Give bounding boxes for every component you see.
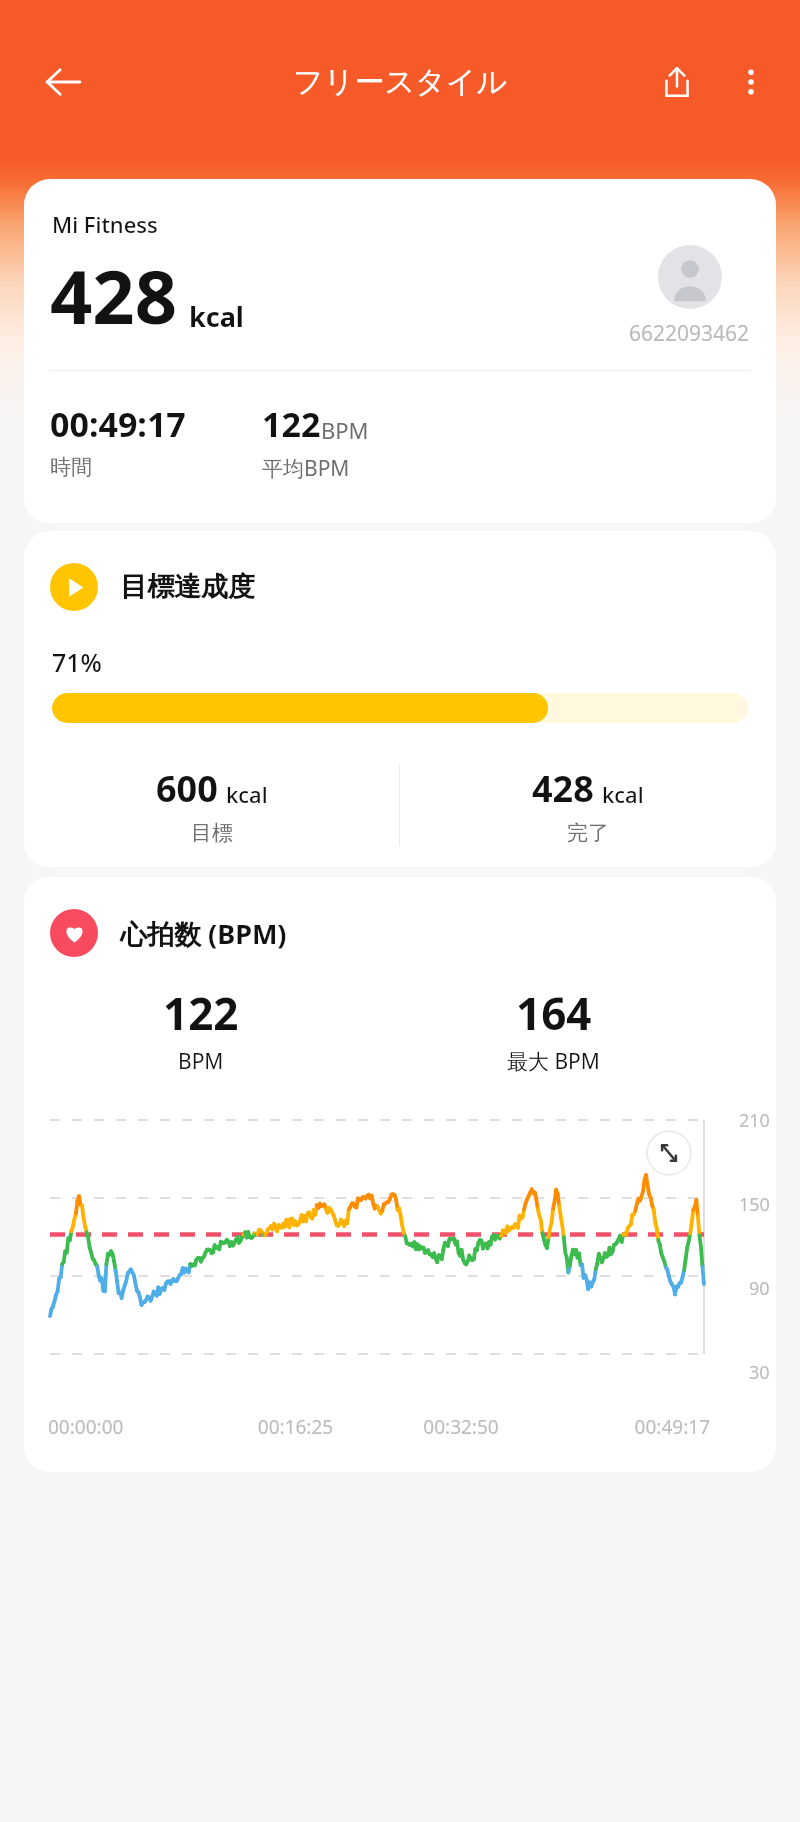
staticText: 心拍数 (BPM) [120,915,287,952]
staticText: 164 [516,983,592,1043]
staticText: 150 [739,1192,770,1217]
staticText: 平均BPM [262,454,350,483]
staticText: 71% [52,645,102,679]
staticText: 目標達成度 [120,570,255,604]
button[interactable]: Expand chart [646,1130,692,1176]
staticText: 目標 [191,820,233,846]
button[interactable]: Back [34,53,92,111]
staticText: 30 [749,1360,770,1385]
button[interactable]: 心拍数 (BPM) [24,877,776,1472]
staticText: 00:49:17 [544,1414,710,1440]
staticText: BPM [321,415,369,445]
staticText: 時間 [50,454,92,480]
staticText: 00:16:25 [213,1414,378,1440]
button[interactable]: Share [648,53,706,111]
staticText: BPM [178,1047,224,1076]
button[interactable]: 目標達成度 [24,531,776,867]
staticText: 完了 [567,820,609,846]
staticText: kcal [602,779,644,809]
staticText: kcal [226,779,268,809]
staticText: 00:49:17 [50,401,186,447]
staticText: Mi Fitness [52,209,158,239]
staticText: 最大 BPM [507,1047,600,1076]
staticText: 00:00:00 [48,1414,213,1440]
staticText: 90 [749,1276,770,1301]
staticText: 122 [163,983,239,1043]
staticText: kcal [189,298,244,335]
button[interactable]: More options [722,53,780,111]
staticText: 210 [739,1108,770,1133]
staticText: 428 [532,764,594,813]
staticText: 122 [262,401,321,447]
staticText: 600 [156,764,218,813]
button[interactable]: Mi Fitness [24,179,776,523]
staticText: 6622093462 [629,319,750,348]
staticText: 00:32:50 [378,1414,544,1440]
staticText: フリースタイル [293,63,508,101]
staticText: 428 [50,245,177,346]
